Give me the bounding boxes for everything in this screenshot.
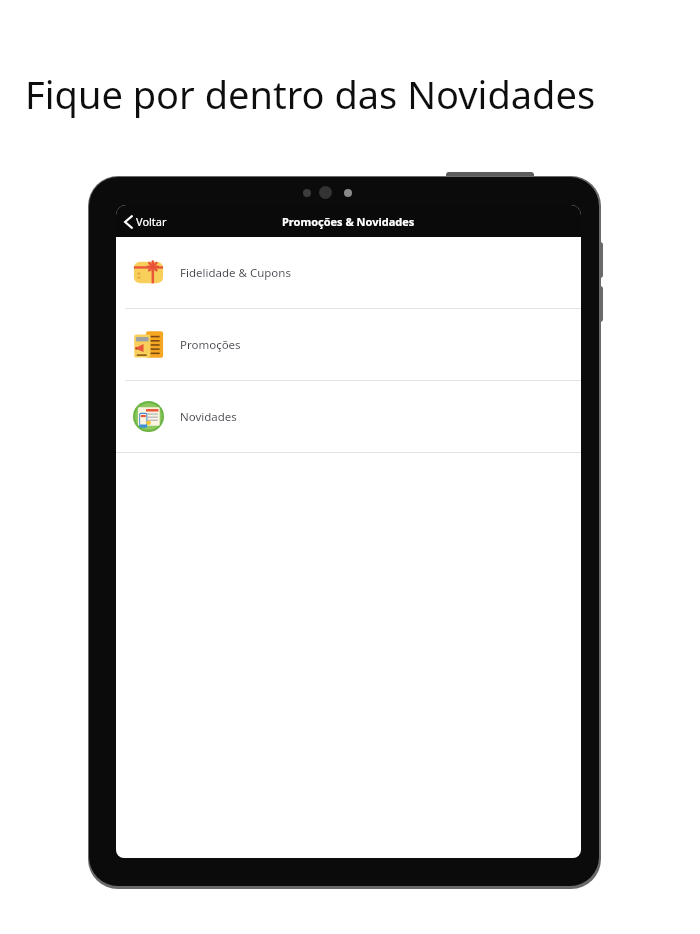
- other: Promoções: [133, 329, 164, 360]
- button[interactable]: Voltar: [121, 209, 170, 234]
- staticText: Promoções: [180, 337, 241, 353]
- staticText: Voltar: [136, 214, 167, 229]
- staticText: Promoções & Novidades: [282, 214, 415, 229]
- button[interactable]: Novidades: [116, 381, 581, 452]
- other: Novidades: [133, 401, 164, 432]
- button[interactable]: Promoções: [116, 309, 581, 380]
- staticText: Novidades: [180, 409, 237, 425]
- staticText: Fidelidade & Cupons: [180, 265, 291, 281]
- button[interactable]: Fidelidade & Cupons: [116, 237, 581, 308]
- staticText: Fique por dentro das Novidades: [25, 68, 596, 120]
- other: Fidelidade & Cupons: [133, 257, 164, 288]
